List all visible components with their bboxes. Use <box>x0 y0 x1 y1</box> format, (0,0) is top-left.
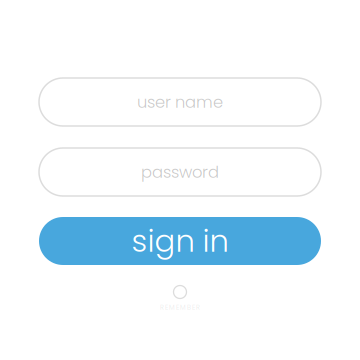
staticText: sign in <box>131 219 228 262</box>
staticText: password <box>141 161 219 183</box>
button[interactable]: password <box>39 148 321 196</box>
staticText: user name <box>137 91 223 113</box>
staticText: REMEMBER <box>160 303 200 312</box>
button[interactable]: REMEMBER <box>120 285 240 311</box>
button[interactable]: user name <box>39 78 321 126</box>
button[interactable]: sign in <box>39 217 321 265</box>
